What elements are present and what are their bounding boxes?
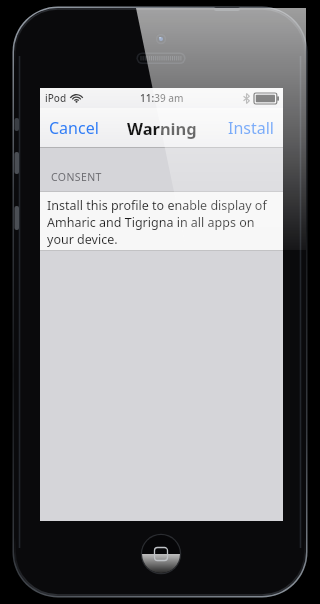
button[interactable]: Install xyxy=(219,109,283,147)
staticText: Cancel xyxy=(49,117,99,139)
staticText: Install xyxy=(228,117,274,139)
staticText: 11:39 am xyxy=(140,91,184,105)
staticText: iPod xyxy=(45,91,67,105)
staticText: Warning xyxy=(127,117,197,139)
button[interactable]: Cancel xyxy=(40,109,108,147)
staticText: Install this profile to enable display o… xyxy=(47,197,277,248)
staticText: CONSENT xyxy=(51,170,102,184)
button[interactable]: Install this profile to enable display o… xyxy=(40,191,283,251)
